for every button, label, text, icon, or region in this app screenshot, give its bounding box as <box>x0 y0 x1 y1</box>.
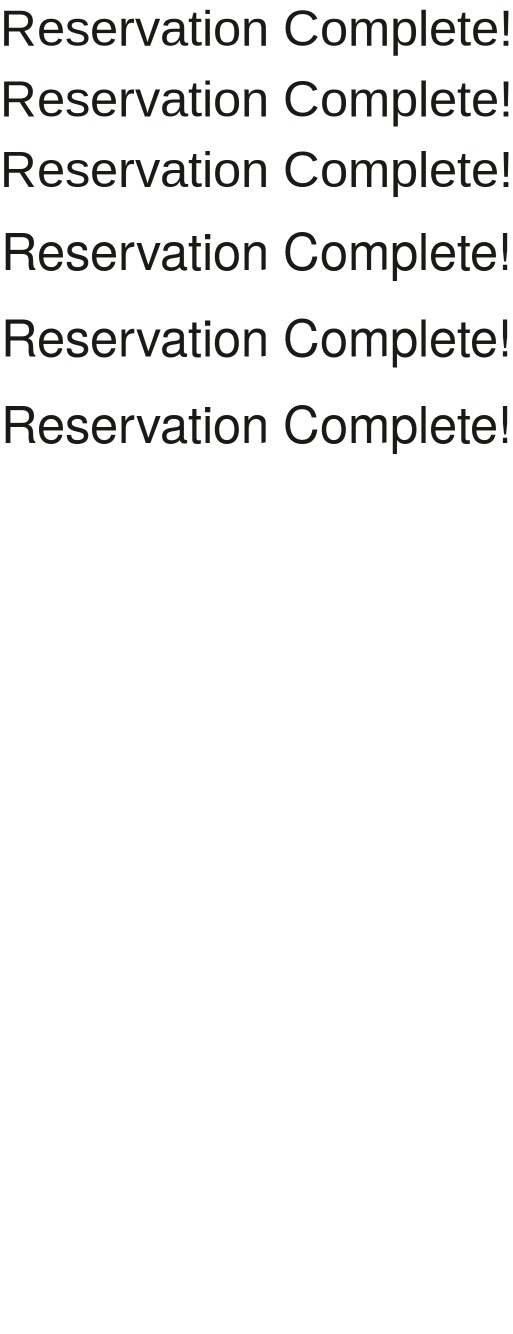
staticText: Reservation Complete! <box>1 298 512 371</box>
staticText: Reservation Complete! <box>0 141 513 198</box>
staticText: Reservation Complete! <box>0 0 513 57</box>
staticText: Reservation Complete! <box>0 71 513 127</box>
staticText: Reservation Complete! <box>1 212 512 284</box>
staticText: Reservation Complete! <box>1 385 512 457</box>
